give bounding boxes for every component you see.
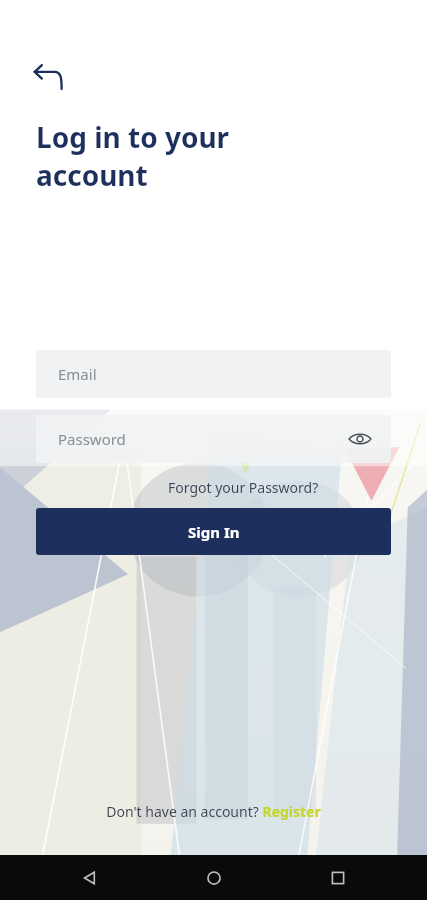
staticText: Log in to your account <box>36 118 230 194</box>
button[interactable]: Back <box>78 867 100 889</box>
button[interactable]: Password <box>36 415 391 463</box>
staticText: Sign In <box>188 522 240 542</box>
button[interactable]: Sign In <box>36 508 391 555</box>
staticText: Forgot your Password? <box>168 478 319 497</box>
staticText: Email <box>58 364 97 384</box>
button[interactable]: Home <box>203 867 225 889</box>
button[interactable]: Back <box>28 58 70 100</box>
staticText: Don't have an account? Register <box>106 802 321 821</box>
button[interactable]: Forgot your Password? <box>166 477 321 498</box>
button[interactable]: Email <box>36 350 391 398</box>
button[interactable]: Recents <box>327 867 349 889</box>
button[interactable]: Show password <box>347 426 373 452</box>
button[interactable]: Don't have an account? Register <box>100 798 327 825</box>
staticText: Password <box>58 429 126 449</box>
